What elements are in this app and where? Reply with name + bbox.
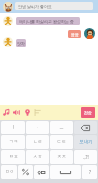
button[interactable]: Backspace (74, 121, 97, 134)
staticText: 응응 (71, 32, 79, 37)
button[interactable]: .,?! (74, 150, 97, 164)
button[interactable]: 안녕 날씨가 좋아요 (15, 2, 93, 10)
staticText: ㅡ (59, 125, 64, 131)
button[interactable]: ? (82, 165, 97, 179)
button[interactable]: Space (50, 165, 81, 179)
button[interactable]: ㅣ (1, 121, 25, 134)
staticText: ㄱㅋ (9, 139, 18, 145)
button[interactable]: ㅅㅎ (26, 150, 49, 164)
button[interactable]: ㅂㅍ (1, 150, 25, 164)
button[interactable]: Voice input (34, 165, 49, 179)
staticText: ㅅㅎ (33, 154, 42, 160)
button[interactable]: Settings (33, 108, 42, 117)
button[interactable]: 앗차 (16, 39, 26, 47)
button[interactable]: Symbols (18, 165, 33, 179)
button[interactable]: 애미나를 하실려고 왕성하는 중 (16, 17, 80, 25)
staticText: 앗차 (17, 41, 25, 46)
staticText: .,?! (83, 154, 89, 160)
staticText: ㅣ (11, 125, 16, 131)
staticText: 안녕 날씨가 좋아요 (18, 4, 53, 9)
button[interactable]: ㅈㅊ (50, 150, 73, 164)
button[interactable]: ㄱㅋ (1, 135, 25, 149)
staticText: ? (89, 169, 91, 175)
staticText: ㅁㅇ (5, 169, 14, 175)
staticText: ㄴㄹ (33, 139, 42, 145)
button[interactable]: Emoticon (23, 108, 32, 117)
staticText: 보내기 (79, 139, 93, 145)
button[interactable]: ㅡ (50, 121, 73, 134)
button[interactable]: Music (2, 108, 11, 117)
button[interactable]: ㄴㄹ (26, 135, 49, 149)
staticText: 전송 (84, 110, 92, 115)
staticText: ㄷㅌ (57, 139, 66, 145)
staticText: ㅈㅊ (57, 154, 66, 160)
button[interactable]: Sound (12, 108, 21, 117)
button[interactable]: ㅁㅇ (1, 165, 17, 179)
button[interactable]: 보내기 (74, 135, 97, 149)
staticText: 애미나를 하실려고 왕성하는 중 (19, 19, 75, 24)
staticText: ㅂㅍ (9, 154, 18, 160)
button[interactable]: 전송 (81, 107, 95, 118)
button[interactable]: ㄷㅌ (50, 135, 73, 149)
button[interactable]: 응응 (68, 30, 81, 38)
